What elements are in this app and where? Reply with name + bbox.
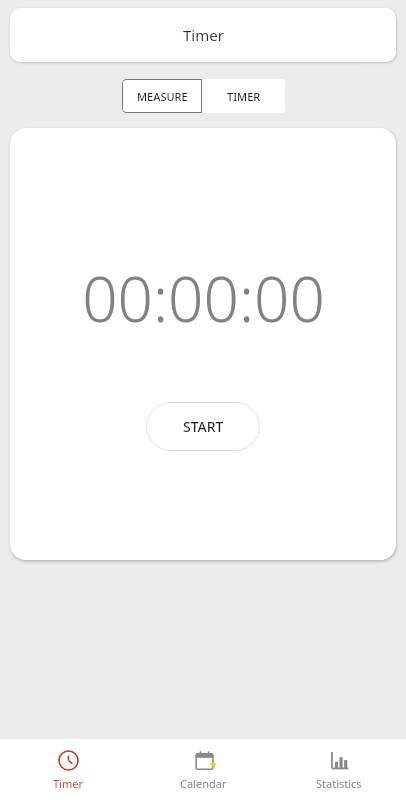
staticText: START (183, 417, 224, 436)
other: Timer (58, 750, 79, 771)
button[interactable]: START (146, 402, 260, 451)
button[interactable]: Calendar (136, 739, 271, 800)
staticText: TIMER (227, 89, 261, 104)
staticText: Timer (183, 25, 224, 45)
other: Calendar (194, 750, 215, 771)
staticText: Calendar (180, 776, 227, 791)
staticText: Statistics (316, 776, 362, 791)
button[interactable]: Timer (10, 8, 396, 62)
staticText: 00:00:00 (82, 256, 325, 340)
staticText: MEASURE (137, 89, 188, 104)
button[interactable]: MEASURE (122, 79, 202, 113)
staticText: Timer (53, 776, 83, 791)
button[interactable]: Timer (0, 739, 136, 800)
button[interactable]: Statistics (271, 739, 406, 800)
button[interactable]: TIMER (202, 79, 285, 113)
other: Statistics (329, 750, 350, 771)
